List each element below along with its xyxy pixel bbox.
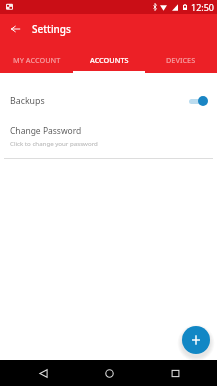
button[interactable]: Backups xyxy=(0,73,217,113)
button[interactable]: MY ACCOUNT xyxy=(0,48,73,73)
button[interactable]: Home xyxy=(96,360,122,386)
button[interactable]: Add xyxy=(182,326,210,354)
button[interactable]: ACCOUNTS xyxy=(73,48,145,73)
button[interactable]: Recents xyxy=(162,360,188,386)
staticText: MY ACCOUNT xyxy=(13,55,61,65)
staticText: ACCOUNTS xyxy=(90,55,129,65)
button[interactable]: DEVICES xyxy=(145,48,217,73)
button[interactable]: Back xyxy=(5,18,26,39)
button[interactable]: Change Password xyxy=(0,113,217,158)
button[interactable]: Back xyxy=(30,360,56,386)
button[interactable]: Backups toggle, on xyxy=(189,96,208,106)
staticText: Backups xyxy=(10,95,45,107)
staticText: 12:50 xyxy=(191,1,215,13)
staticText: Change Password xyxy=(10,125,82,137)
staticText: Settings xyxy=(32,22,71,36)
staticText: DEVICES xyxy=(166,55,196,65)
staticText: Click to change your password xyxy=(10,139,98,147)
